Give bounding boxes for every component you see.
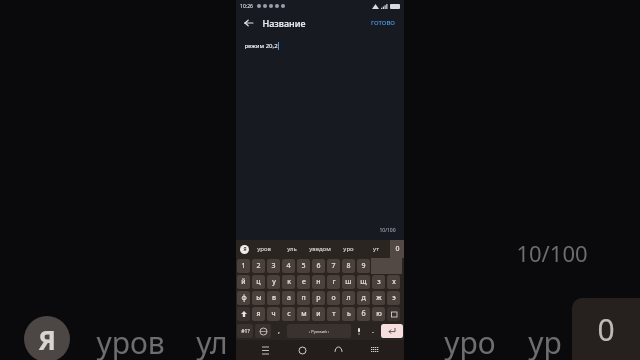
button[interactable]: и bbox=[312, 307, 325, 321]
staticText: ф bbox=[241, 293, 247, 303]
button[interactable]: й bbox=[237, 275, 250, 289]
staticText: у bbox=[272, 277, 276, 287]
button[interactable]: т bbox=[327, 307, 340, 321]
staticText: 1 bbox=[241, 261, 246, 271]
button[interactable]: г bbox=[327, 275, 340, 289]
staticText: уров bbox=[96, 322, 165, 360]
button[interactable]: 3 bbox=[267, 259, 280, 273]
staticText: й bbox=[241, 277, 246, 287]
button[interactable]: уль bbox=[278, 245, 306, 253]
staticText: ш bbox=[345, 277, 352, 287]
button[interactable]: уро bbox=[334, 245, 362, 253]
button[interactable]: х bbox=[387, 275, 400, 289]
button[interactable]: уров bbox=[249, 245, 278, 253]
button[interactable]: а bbox=[282, 291, 295, 305]
staticText: 10/100 bbox=[516, 238, 588, 268]
button[interactable]: к bbox=[282, 275, 295, 289]
staticText: ю bbox=[376, 309, 382, 319]
staticText: ‹ Русский › bbox=[309, 329, 329, 334]
button[interactable]: ы bbox=[252, 291, 265, 305]
staticText: 3 bbox=[271, 261, 276, 271]
button[interactable]: л bbox=[342, 291, 355, 305]
staticText: 8 bbox=[346, 261, 351, 271]
staticText: х bbox=[392, 277, 396, 287]
button[interactable]: Back bbox=[242, 16, 256, 30]
staticText: с bbox=[287, 309, 291, 319]
staticText: м bbox=[301, 309, 307, 319]
button[interactable]: ‹ Русский › bbox=[287, 324, 351, 338]
button[interactable]: о bbox=[327, 291, 340, 305]
staticText: л bbox=[346, 293, 351, 303]
button[interactable]: 0 bbox=[390, 240, 404, 258]
button[interactable]: ю bbox=[372, 307, 385, 321]
button[interactable]: э bbox=[387, 291, 400, 305]
button[interactable]: 5 bbox=[297, 259, 310, 273]
button[interactable]: уведом bbox=[306, 245, 334, 253]
button[interactable]: . bbox=[367, 324, 379, 338]
button[interactable]: б bbox=[357, 307, 370, 321]
button[interactable]: е bbox=[297, 275, 310, 289]
button[interactable]: ш bbox=[342, 275, 355, 289]
button[interactable]: с bbox=[282, 307, 295, 321]
button[interactable]: Enter bbox=[381, 324, 403, 338]
button[interactable]: н bbox=[312, 275, 325, 289]
staticText: я bbox=[256, 309, 261, 319]
button[interactable]: 2 bbox=[252, 259, 265, 273]
button[interactable]: Yandex bbox=[240, 245, 249, 254]
staticText: Я bbox=[243, 246, 247, 253]
staticText: 10:26 bbox=[240, 3, 253, 10]
button[interactable]: з bbox=[372, 275, 385, 289]
button[interactable]: Emoji bbox=[255, 324, 271, 338]
staticText: ц bbox=[256, 277, 261, 287]
staticText: уро bbox=[343, 245, 354, 253]
button[interactable]: ь bbox=[342, 307, 355, 321]
button[interactable]: Recents bbox=[257, 342, 273, 358]
button[interactable]: я bbox=[252, 307, 265, 321]
button[interactable]: #1? bbox=[237, 324, 253, 338]
button[interactable]: п bbox=[297, 291, 310, 305]
staticText: т bbox=[332, 309, 336, 319]
button[interactable]: 9 bbox=[357, 259, 370, 273]
button[interactable]: у bbox=[267, 275, 280, 289]
button[interactable]: Voice input bbox=[352, 323, 366, 339]
button[interactable]: д bbox=[357, 291, 370, 305]
staticText: ул bbox=[196, 322, 228, 360]
staticText: уров bbox=[257, 245, 271, 253]
button[interactable]: Backspace bbox=[387, 307, 400, 321]
staticText: ы bbox=[256, 293, 262, 303]
button[interactable]: Shift bbox=[237, 307, 250, 321]
staticText: э bbox=[392, 293, 396, 303]
button[interactable]: 4 bbox=[282, 259, 295, 273]
staticText: Название bbox=[262, 17, 306, 29]
staticText: . bbox=[372, 326, 374, 336]
button[interactable]: 8 bbox=[342, 259, 355, 273]
button[interactable]: ф bbox=[237, 291, 250, 305]
button[interactable]: ч bbox=[267, 307, 280, 321]
staticText: ур bbox=[528, 322, 562, 360]
button[interactable]: Keyboard bbox=[367, 342, 383, 358]
button[interactable]: 6 bbox=[312, 259, 325, 273]
button[interactable]: р bbox=[312, 291, 325, 305]
button[interactable]: Home bbox=[294, 342, 310, 358]
staticText: уль bbox=[287, 245, 297, 253]
staticText: 10/100 bbox=[379, 227, 396, 234]
staticText: , bbox=[278, 326, 280, 336]
button[interactable]: Back bbox=[330, 342, 346, 358]
button[interactable]: ут bbox=[362, 245, 390, 253]
button[interactable]: ГОТОВО bbox=[368, 17, 398, 29]
staticText: р bbox=[316, 293, 321, 303]
button[interactable]: ж bbox=[372, 291, 385, 305]
staticText: в bbox=[272, 293, 276, 303]
button[interactable]: м bbox=[297, 307, 310, 321]
staticText: 0 bbox=[597, 309, 615, 350]
staticText: 0 bbox=[395, 244, 400, 254]
button[interactable]: в bbox=[267, 291, 280, 305]
button[interactable]: 7 bbox=[327, 259, 340, 273]
button[interactable]: 1 bbox=[237, 259, 250, 273]
button[interactable]: ц bbox=[252, 275, 265, 289]
button[interactable]: щ bbox=[357, 275, 370, 289]
staticText: ч bbox=[271, 309, 276, 319]
staticText: режим 20,2 bbox=[244, 42, 278, 50]
button[interactable]: , bbox=[273, 324, 285, 338]
staticText: к bbox=[287, 277, 291, 287]
